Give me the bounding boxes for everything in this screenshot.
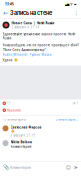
staticText: Удачи 🙂	[2, 58, 17, 62]
staticText: Кому сообщить что на проекте произошел с…	[2, 43, 78, 47]
staticText: ☺	[65, 164, 71, 171]
staticText: ←	[3, 9, 9, 17]
staticText: Комментарий	[10, 165, 31, 170]
staticText: Запись на стене	[10, 10, 52, 16]
button[interactable]: Emoji	[65, 162, 72, 173]
staticText: Nikita Baikow	[10, 140, 32, 144]
button[interactable]: Back	[2, 8, 10, 18]
staticText: 🔥	[10, 130, 14, 133]
staticText: 2 февраля в 21:14	[11, 25, 39, 29]
button[interactable]: Attach	[2, 162, 10, 173]
button[interactable]: Сначала старые ⌄	[55, 118, 78, 121]
staticText: ▃▅ ᯤ ▰	[65, 2, 76, 6]
staticText: Новые Силы | Harsh Russia	[11, 21, 54, 25]
staticText: 11	[6, 101, 11, 105]
staticText: ⋮	[73, 10, 78, 16]
staticText: 13 комментариев	[2, 118, 26, 121]
staticText: Ruslan_Mihailich Русские Маски	[2, 53, 51, 57]
button[interactable]: More options	[73, 8, 79, 18]
staticText: 13:45	[5, 2, 14, 6]
button[interactable]: Send	[72, 162, 79, 173]
staticText: Комментарий	[10, 145, 31, 149]
staticText: 3 февраля 21:19	[10, 134, 35, 137]
staticText: Нравится	[7, 108, 21, 112]
staticText: Святослав Фирсов	[10, 125, 41, 129]
staticText: Здравствуйте уважаемые игроки проекта Ha…	[2, 32, 75, 40]
button[interactable]: Нравится	[0, 105, 81, 112]
staticText: 📎	[2, 164, 9, 171]
staticText: 👁 1	[72, 101, 78, 105]
staticText: ➤	[73, 164, 77, 171]
staticText: Сначала старые ⌄	[55, 118, 78, 121]
staticText: "Поле Слез, Администратор"	[2, 48, 45, 52]
